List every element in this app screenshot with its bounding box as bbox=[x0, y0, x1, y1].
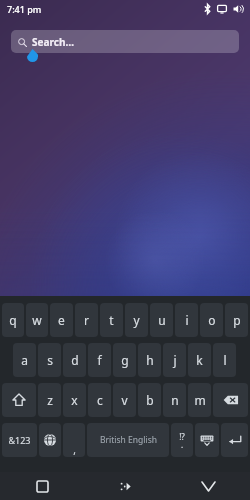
staticText: d bbox=[71, 352, 79, 368]
button[interactable]: g bbox=[113, 343, 136, 377]
staticText: v bbox=[121, 392, 128, 408]
staticText: r bbox=[84, 312, 89, 328]
button[interactable]: a bbox=[13, 343, 36, 377]
button[interactable]: Shift bbox=[2, 383, 36, 417]
staticText: j bbox=[173, 352, 177, 368]
button[interactable]: h bbox=[138, 343, 161, 377]
staticText: , bbox=[73, 443, 76, 457]
button[interactable]: !? . bbox=[171, 423, 193, 457]
button[interactable]: m bbox=[188, 383, 211, 417]
staticText: l bbox=[223, 352, 227, 368]
staticText: o bbox=[208, 312, 216, 328]
staticText: e bbox=[58, 312, 65, 328]
button[interactable]: z bbox=[38, 383, 61, 417]
staticText: a bbox=[21, 352, 28, 368]
button[interactable]: d bbox=[63, 343, 86, 377]
staticText: Search… bbox=[32, 35, 74, 49]
button[interactable]: j bbox=[163, 343, 186, 377]
button[interactable]: w bbox=[26, 303, 48, 337]
button[interactable]: , bbox=[63, 423, 85, 457]
staticText: u bbox=[158, 312, 166, 328]
button[interactable]: i bbox=[175, 303, 198, 337]
button[interactable]: k bbox=[188, 343, 211, 377]
staticText: w bbox=[32, 312, 42, 328]
staticText: n bbox=[171, 392, 179, 408]
staticText: x bbox=[71, 392, 78, 408]
button[interactable]: Change language bbox=[39, 423, 61, 457]
button[interactable]: l bbox=[213, 343, 236, 377]
button[interactable]: u bbox=[150, 303, 173, 337]
staticText: q bbox=[9, 312, 17, 328]
staticText: 7:41 pm bbox=[7, 3, 42, 15]
staticText: p bbox=[233, 312, 241, 328]
button[interactable]: Hide keyboard bbox=[195, 423, 219, 457]
button[interactable]: c bbox=[88, 383, 111, 417]
staticText: k bbox=[196, 352, 203, 368]
button[interactable]: Enter bbox=[221, 423, 248, 457]
staticText: c bbox=[97, 392, 103, 408]
button[interactable]: y bbox=[125, 303, 148, 337]
button[interactable]: Backspace bbox=[213, 383, 248, 417]
staticText: i bbox=[185, 312, 189, 328]
button[interactable]: r bbox=[75, 303, 98, 337]
button[interactable]: p bbox=[225, 303, 248, 337]
button[interactable]: b bbox=[138, 383, 161, 417]
staticText: s bbox=[47, 352, 53, 368]
button[interactable]: v bbox=[113, 383, 136, 417]
staticText: &123 bbox=[8, 434, 31, 446]
staticText: !? . bbox=[179, 431, 185, 450]
staticText: f bbox=[97, 352, 102, 368]
button[interactable]: s bbox=[38, 343, 61, 377]
staticText: h bbox=[146, 352, 154, 368]
staticText: g bbox=[121, 352, 129, 368]
staticText: z bbox=[47, 392, 53, 408]
staticText: British English bbox=[100, 434, 157, 446]
button[interactable]: Search… bbox=[11, 30, 239, 53]
button[interactable]: f bbox=[88, 343, 111, 377]
staticText: t bbox=[109, 312, 114, 328]
button[interactable]: t bbox=[100, 303, 123, 337]
button[interactable]: British English bbox=[87, 423, 169, 457]
staticText: b bbox=[146, 392, 154, 408]
button[interactable]: Back bbox=[167, 472, 250, 500]
button[interactable]: o bbox=[200, 303, 223, 337]
staticText: m bbox=[194, 392, 206, 408]
button[interactable]: q bbox=[2, 303, 24, 337]
staticText: y bbox=[133, 312, 140, 328]
button[interactable]: Recent apps bbox=[0, 472, 84, 500]
button[interactable]: &123 bbox=[2, 423, 37, 457]
button[interactable]: Home bbox=[84, 472, 167, 500]
button[interactable]: n bbox=[163, 383, 186, 417]
button[interactable]: x bbox=[63, 383, 86, 417]
button[interactable]: e bbox=[50, 303, 73, 337]
